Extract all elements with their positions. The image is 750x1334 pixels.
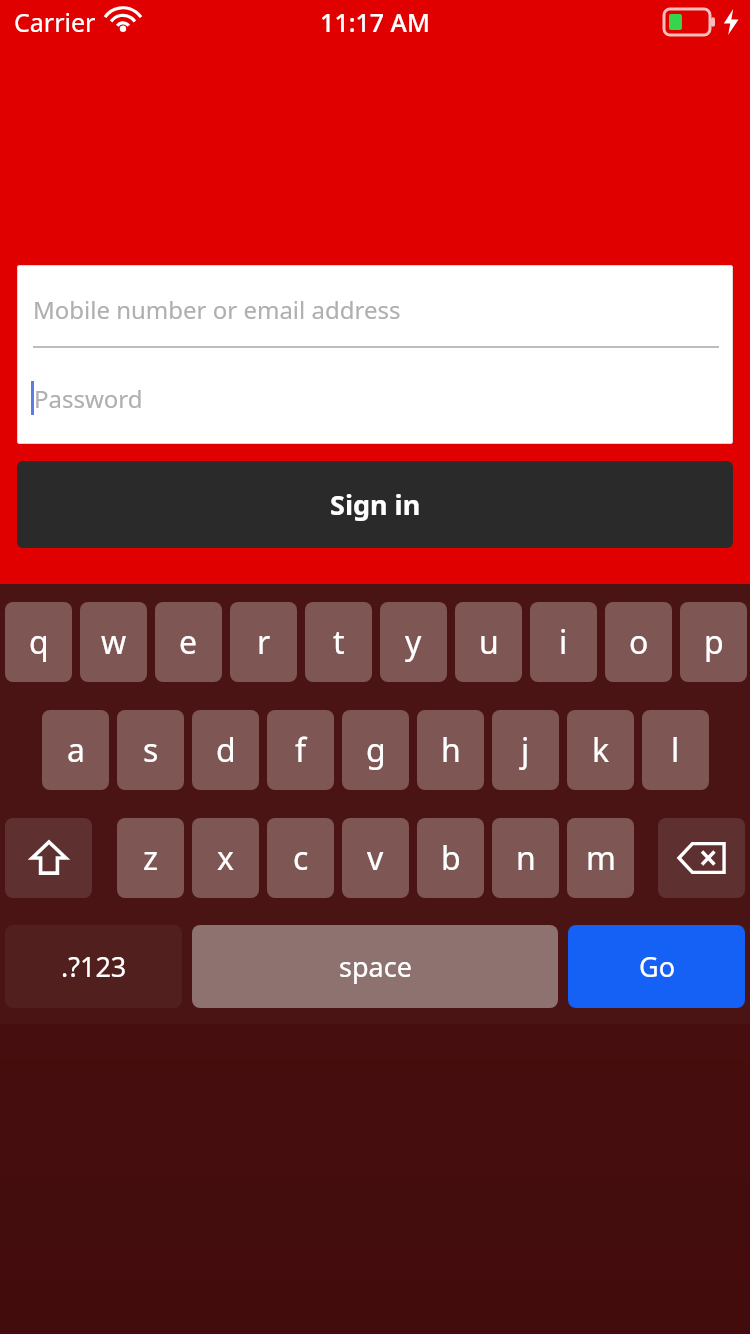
- staticText: e: [179, 620, 198, 664]
- staticText: y: [405, 620, 422, 664]
- staticText: u: [479, 620, 499, 664]
- button[interactable]: s: [117, 710, 184, 790]
- button[interactable]: Go: [568, 925, 745, 1008]
- staticText: q: [29, 620, 49, 664]
- staticText: 11:17 AM: [320, 5, 430, 39]
- button[interactable]: o: [605, 602, 672, 682]
- staticText: l: [671, 728, 680, 772]
- staticText: v: [367, 836, 384, 880]
- staticText: Go: [639, 948, 675, 985]
- button[interactable]: Sign in: [17, 461, 733, 548]
- button[interactable]: b: [417, 818, 484, 898]
- button[interactable]: h: [417, 710, 484, 790]
- staticText: t: [333, 620, 345, 664]
- staticText: i: [559, 620, 568, 664]
- button[interactable]: w: [80, 602, 147, 682]
- button[interactable]: Backspace: [658, 818, 745, 898]
- staticText: Password: [34, 382, 143, 415]
- staticText: g: [366, 728, 386, 772]
- button[interactable]: .?123: [5, 925, 182, 1008]
- button[interactable]: f: [267, 710, 334, 790]
- button[interactable]: t: [305, 602, 372, 682]
- button[interactable]: p: [680, 602, 747, 682]
- button[interactable]: space: [192, 925, 558, 1008]
- staticText: k: [592, 728, 610, 772]
- button[interactable]: y: [380, 602, 447, 682]
- button[interactable]: g: [342, 710, 409, 790]
- button[interactable]: a: [42, 710, 109, 790]
- button[interactable]: r: [230, 602, 297, 682]
- staticText: j: [521, 728, 530, 772]
- button[interactable]: c: [267, 818, 334, 898]
- staticText: z: [143, 836, 159, 880]
- button[interactable]: j: [492, 710, 559, 790]
- button[interactable]: k: [567, 710, 634, 790]
- button[interactable]: v: [342, 818, 409, 898]
- staticText: r: [257, 620, 271, 664]
- button[interactable]: Mobile number or email address: [17, 265, 733, 353]
- staticText: Mobile number or email address: [33, 293, 401, 326]
- button[interactable]: u: [455, 602, 522, 682]
- staticText: .?123: [61, 948, 127, 985]
- staticText: h: [441, 728, 461, 772]
- button[interactable]: m: [567, 818, 634, 898]
- button[interactable]: z: [117, 818, 184, 898]
- button[interactable]: Shift: [5, 818, 92, 898]
- staticText: o: [629, 620, 649, 664]
- staticText: c: [293, 836, 309, 880]
- staticText: m: [586, 836, 616, 880]
- button[interactable]: d: [192, 710, 259, 790]
- staticText: Sign in: [330, 486, 421, 523]
- staticText: space: [339, 948, 412, 985]
- staticText: w: [101, 620, 127, 664]
- staticText: b: [441, 836, 461, 880]
- staticText: n: [516, 836, 536, 880]
- button[interactable]: l: [642, 710, 709, 790]
- staticText: s: [143, 728, 159, 772]
- button[interactable]: Password: [17, 353, 733, 443]
- button[interactable]: e: [155, 602, 222, 682]
- button[interactable]: q: [5, 602, 72, 682]
- staticText: x: [217, 836, 234, 880]
- staticText: f: [295, 728, 307, 772]
- staticText: d: [216, 728, 236, 772]
- staticText: p: [704, 620, 724, 664]
- staticText: Carrier: [14, 5, 96, 39]
- staticText: a: [67, 728, 85, 772]
- button[interactable]: x: [192, 818, 259, 898]
- button[interactable]: i: [530, 602, 597, 682]
- button[interactable]: n: [492, 818, 559, 898]
